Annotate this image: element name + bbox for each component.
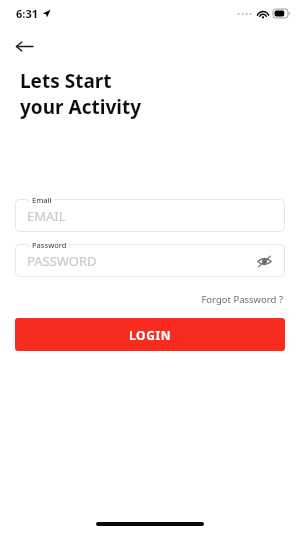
staticText: Email <box>32 195 52 205</box>
staticText: EMAIL <box>27 207 66 225</box>
button[interactable]: Password <box>15 244 285 277</box>
staticText: Forgot Password ? <box>201 293 283 306</box>
button[interactable]: Toggle password visibility <box>253 250 275 272</box>
staticText: Password <box>32 240 67 250</box>
button[interactable]: Back <box>8 30 40 62</box>
button[interactable]: Forgot Password ? <box>199 291 285 308</box>
staticText: Lets Start <box>20 68 112 94</box>
staticText: PASSWORD <box>27 252 97 270</box>
staticText: your Activity <box>20 94 142 120</box>
button[interactable]: Email <box>15 199 285 232</box>
staticText: LOGIN <box>129 327 172 343</box>
staticText: 6:31 <box>16 6 38 21</box>
button[interactable]: LOGIN <box>15 318 285 351</box>
